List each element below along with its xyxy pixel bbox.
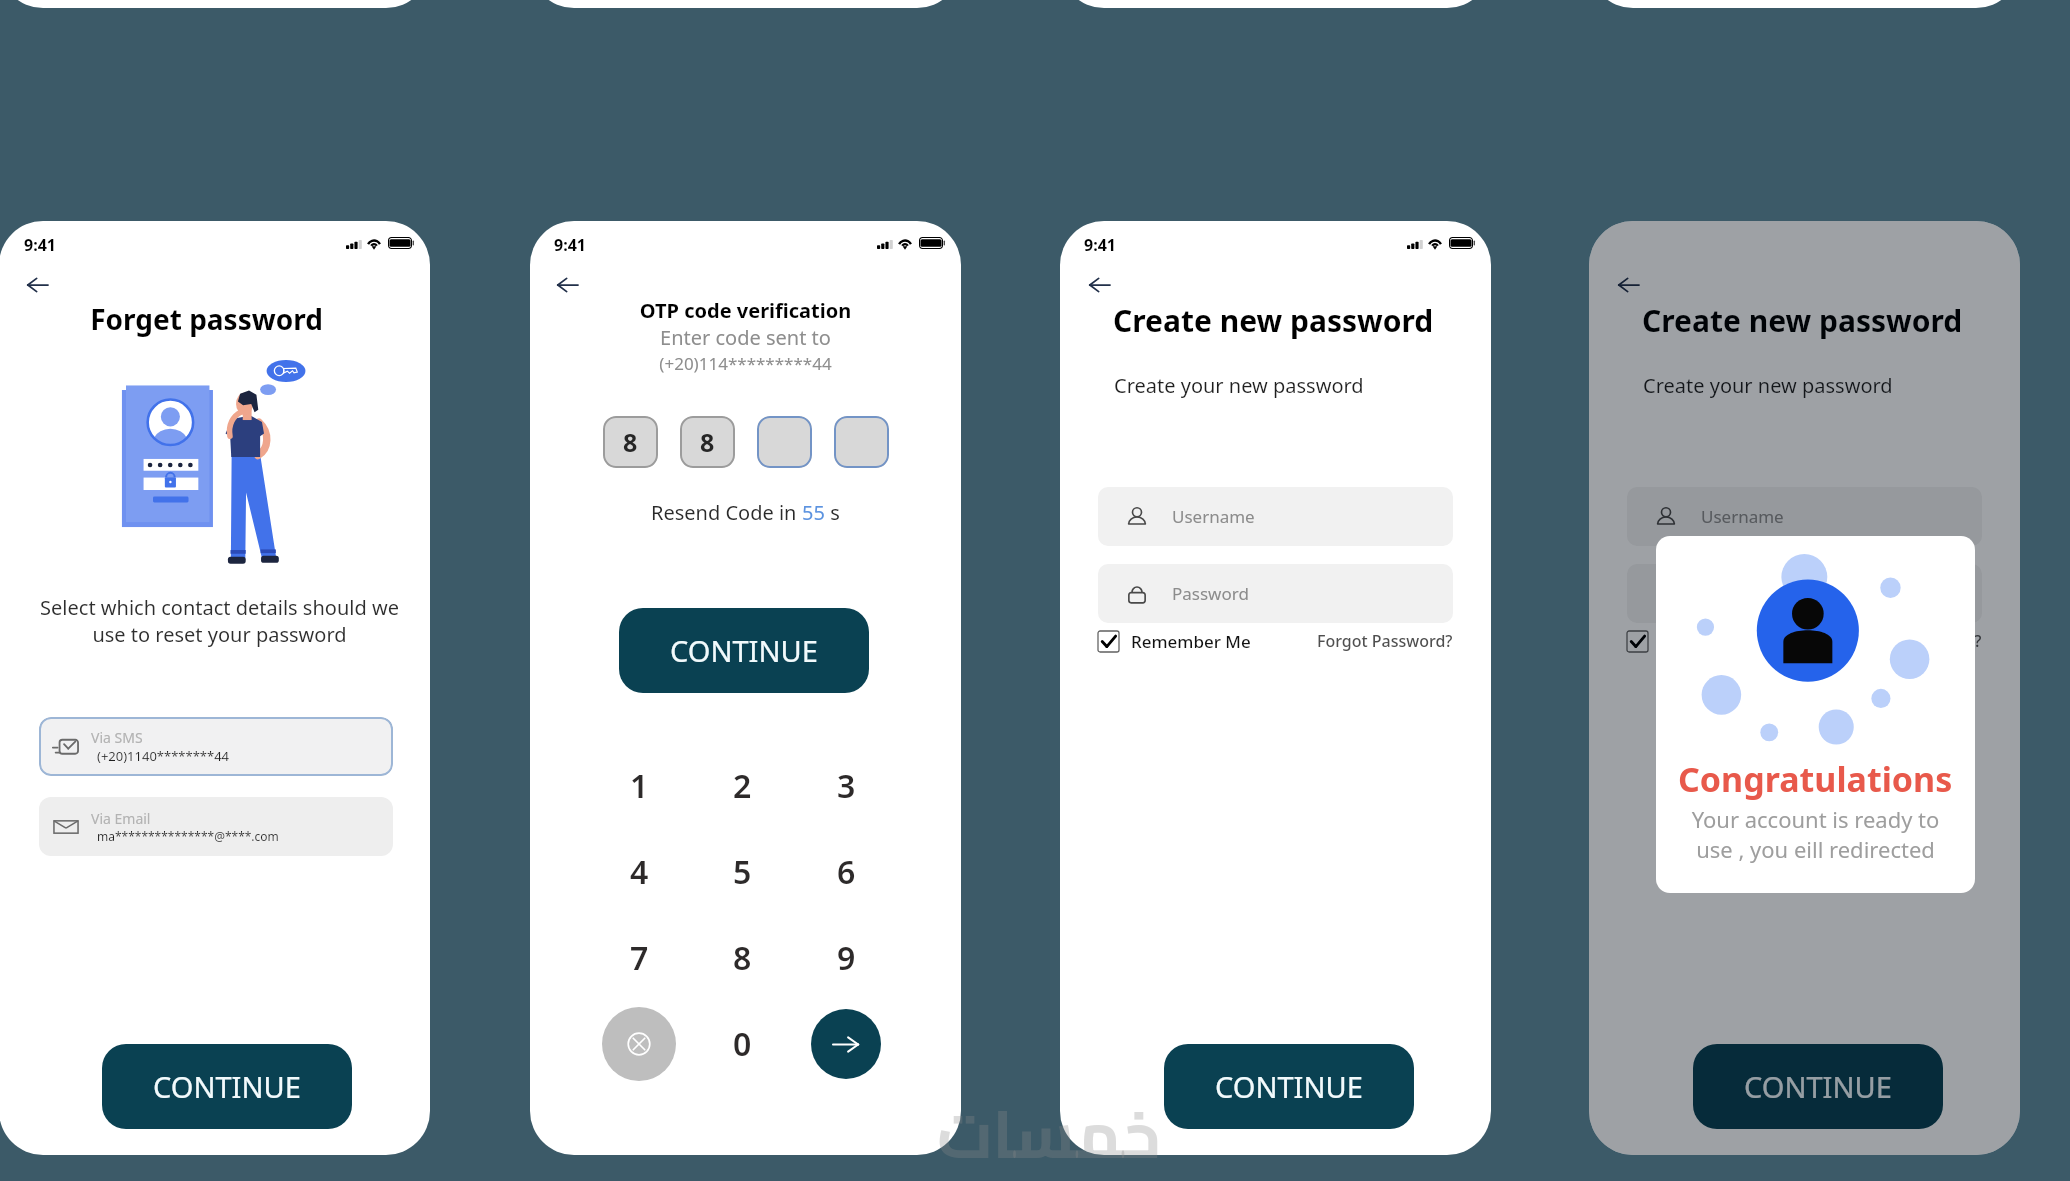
- button[interactable]: 0: [706, 1017, 778, 1071]
- staticText: Via SMS: [91, 728, 143, 747]
- staticText: Forget password: [0, 300, 422, 338]
- button[interactable]: Back: [1077, 268, 1121, 302]
- button[interactable]: 6: [810, 845, 882, 899]
- button[interactable]: 7: [603, 931, 675, 985]
- staticText: Forgot Password?: [1317, 630, 1453, 652]
- button[interactable]: Username: [1098, 487, 1453, 546]
- staticText: Select which contact details should we u…: [4, 594, 430, 648]
- button[interactable]: Back: [545, 268, 589, 302]
- button[interactable]: 1: [603, 759, 675, 813]
- staticText: Password: [1172, 582, 1249, 605]
- staticText: ma***************@****.com: [97, 828, 279, 844]
- button[interactable]: 9: [810, 931, 882, 985]
- staticText: CONTINUE: [1744, 1067, 1892, 1106]
- button[interactable]: Remember Me: [1627, 630, 1780, 652]
- button[interactable]: Back: [15, 268, 59, 302]
- button[interactable]: 4: [603, 845, 675, 899]
- button[interactable]: 2: [706, 759, 778, 813]
- button[interactable]: 8: [603, 416, 658, 468]
- staticText: (+20)1140********44: [97, 747, 230, 765]
- staticText: Username: [1172, 505, 1255, 528]
- staticText: Resend Code in: [651, 499, 802, 526]
- button[interactable]: Forgot Password?: [1846, 630, 1982, 652]
- button[interactable]: Password: [1098, 564, 1453, 623]
- staticText: Remember Me: [1660, 630, 1780, 652]
- staticText: 8: [700, 425, 715, 459]
- staticText: Create new password: [1113, 300, 1434, 341]
- button[interactable]: [757, 416, 812, 468]
- staticText: Via Email: [91, 809, 151, 828]
- staticText: CONTINUE: [1215, 1067, 1363, 1106]
- staticText: 55: [802, 499, 825, 526]
- button[interactable]: Username: [1627, 487, 1982, 546]
- staticText: 3: [837, 764, 856, 808]
- button[interactable]: Next: [811, 1009, 881, 1079]
- button[interactable]: Delete: [602, 1007, 676, 1081]
- button[interactable]: CONTINUE: [1164, 1044, 1414, 1129]
- button[interactable]: Remember Me: [1098, 630, 1251, 652]
- button[interactable]: CONTINUE: [619, 608, 869, 693]
- staticText: 7: [630, 936, 649, 980]
- staticText: 4: [630, 850, 649, 894]
- staticText: (+20)114*********44: [530, 352, 961, 375]
- button[interactable]: CONTINUE: [102, 1044, 352, 1129]
- staticText: Your account is ready to use , you eill …: [1656, 804, 1975, 864]
- staticText: Username: [1701, 505, 1784, 528]
- staticText: CONTINUE: [670, 631, 818, 670]
- staticText: Create your new password: [1643, 372, 1893, 399]
- staticText: 9:41: [24, 234, 56, 256]
- staticText: 6: [837, 850, 856, 894]
- button[interactable]: CONTINUE: [1693, 1044, 1943, 1129]
- staticText: 9:41: [554, 234, 586, 256]
- staticText: s: [825, 499, 840, 526]
- staticText: 9: [837, 936, 856, 980]
- staticText: 0: [733, 1022, 752, 1066]
- staticText: CONTINUE: [153, 1067, 301, 1106]
- button[interactable]: 8: [706, 931, 778, 985]
- staticText: 8: [733, 936, 752, 980]
- button[interactable]: Back: [1606, 268, 1650, 302]
- staticText: 1: [630, 764, 649, 808]
- staticText: 9:41: [1084, 234, 1116, 256]
- staticText: 8: [623, 425, 638, 459]
- staticText: OTP code verification: [530, 297, 961, 324]
- staticText: 5: [733, 850, 752, 894]
- button[interactable]: Via Email: [39, 797, 393, 856]
- button[interactable]: [834, 416, 889, 468]
- button[interactable]: Password: [1627, 564, 1982, 623]
- button[interactable]: 5: [706, 845, 778, 899]
- staticText: Congratulations: [1678, 756, 1953, 802]
- staticText: Forgot Password?: [1846, 630, 1982, 652]
- button[interactable]: Forgot Password?: [1317, 630, 1453, 652]
- staticText: Remember Me: [1131, 630, 1251, 652]
- staticText: Create your new password: [1114, 372, 1364, 399]
- staticText: Password: [1701, 582, 1778, 605]
- staticText: Create new password: [1642, 300, 1963, 341]
- button[interactable]: 3: [810, 759, 882, 813]
- button[interactable]: 8: [680, 416, 735, 468]
- button[interactable]: Via SMS: [39, 717, 393, 776]
- staticText: 2: [733, 764, 752, 808]
- staticText: Enter code sent to: [530, 324, 961, 351]
- staticText: خمسات: [937, 1072, 1162, 1181]
